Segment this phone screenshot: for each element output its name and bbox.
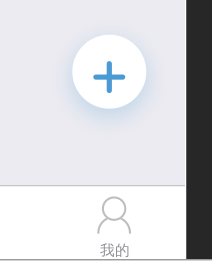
button[interactable]: Add: [72, 35, 146, 109]
staticText: 我的: [100, 241, 130, 259]
button[interactable]: 我的: [84, 186, 146, 256]
